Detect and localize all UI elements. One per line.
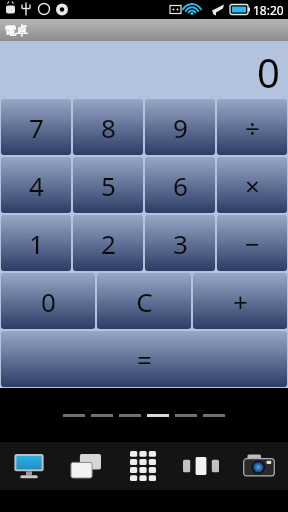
- staticText: +: [233, 284, 248, 319]
- button[interactable]: =: [1, 331, 287, 387]
- staticText: 1: [29, 226, 44, 261]
- button[interactable]: 7: [1, 99, 71, 155]
- staticText: −: [245, 226, 260, 261]
- staticText: 0: [257, 45, 280, 98]
- button[interactable]: Apps: [114, 442, 172, 490]
- button[interactable]: C: [97, 273, 191, 329]
- button[interactable]: Windows: [57, 442, 114, 490]
- staticText: ×: [245, 168, 260, 203]
- staticText: 4: [29, 168, 44, 203]
- staticText: C: [136, 284, 153, 319]
- button[interactable]: 5: [73, 157, 143, 213]
- button[interactable]: 0: [1, 273, 95, 329]
- staticText: 6: [173, 168, 188, 203]
- button[interactable]: ÷: [217, 99, 287, 155]
- button[interactable]: 6: [145, 157, 215, 213]
- staticText: ÷: [245, 110, 260, 145]
- staticText: 18:20: [253, 2, 284, 18]
- staticText: 0: [41, 284, 56, 319]
- staticText: 3: [173, 226, 188, 261]
- button[interactable]: 3: [145, 215, 215, 271]
- button[interactable]: 1: [1, 215, 71, 271]
- button[interactable]: 9: [145, 99, 215, 155]
- staticText: 2: [101, 226, 116, 261]
- button[interactable]: Desktop: [0, 442, 57, 490]
- staticText: 電卓: [4, 23, 28, 38]
- button[interactable]: −: [217, 215, 287, 271]
- button[interactable]: +: [193, 273, 287, 329]
- button[interactable]: 8: [73, 99, 143, 155]
- button[interactable]: 4: [1, 157, 71, 213]
- staticText: 8: [101, 110, 116, 145]
- staticText: 7: [29, 110, 44, 145]
- button[interactable]: ×: [217, 157, 287, 213]
- staticText: =: [137, 342, 152, 377]
- button[interactable]: Camera: [230, 442, 288, 490]
- button[interactable]: 2: [73, 215, 143, 271]
- staticText: 5: [101, 168, 116, 203]
- staticText: 9: [173, 110, 188, 145]
- button[interactable]: Tasks: [172, 442, 230, 490]
